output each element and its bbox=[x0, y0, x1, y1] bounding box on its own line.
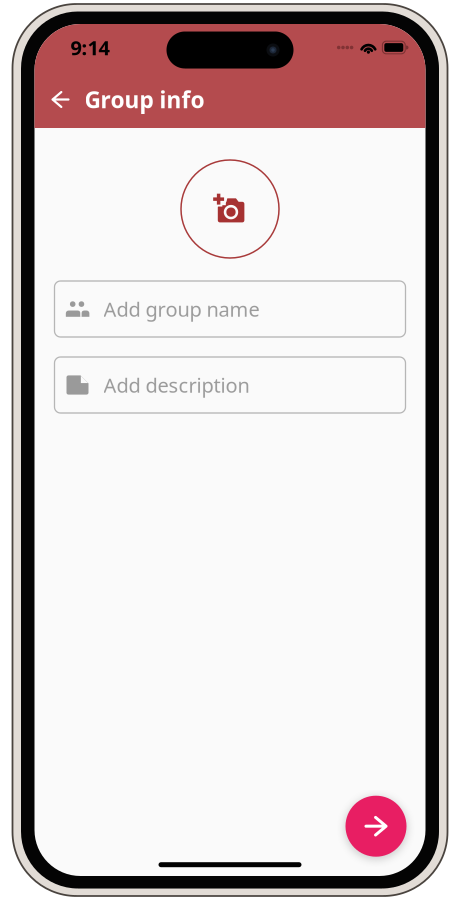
staticText: 9:14 bbox=[70, 34, 109, 61]
staticText: Group info bbox=[84, 84, 204, 114]
button[interactable]: Add group photo bbox=[181, 160, 279, 258]
staticText: Add description bbox=[103, 372, 249, 398]
staticText: Add group name bbox=[103, 296, 259, 322]
button[interactable]: Back bbox=[41, 77, 79, 121]
button[interactable]: Add group name bbox=[54, 281, 405, 337]
button[interactable]: Add description bbox=[54, 357, 405, 413]
button[interactable]: Next bbox=[345, 796, 406, 857]
